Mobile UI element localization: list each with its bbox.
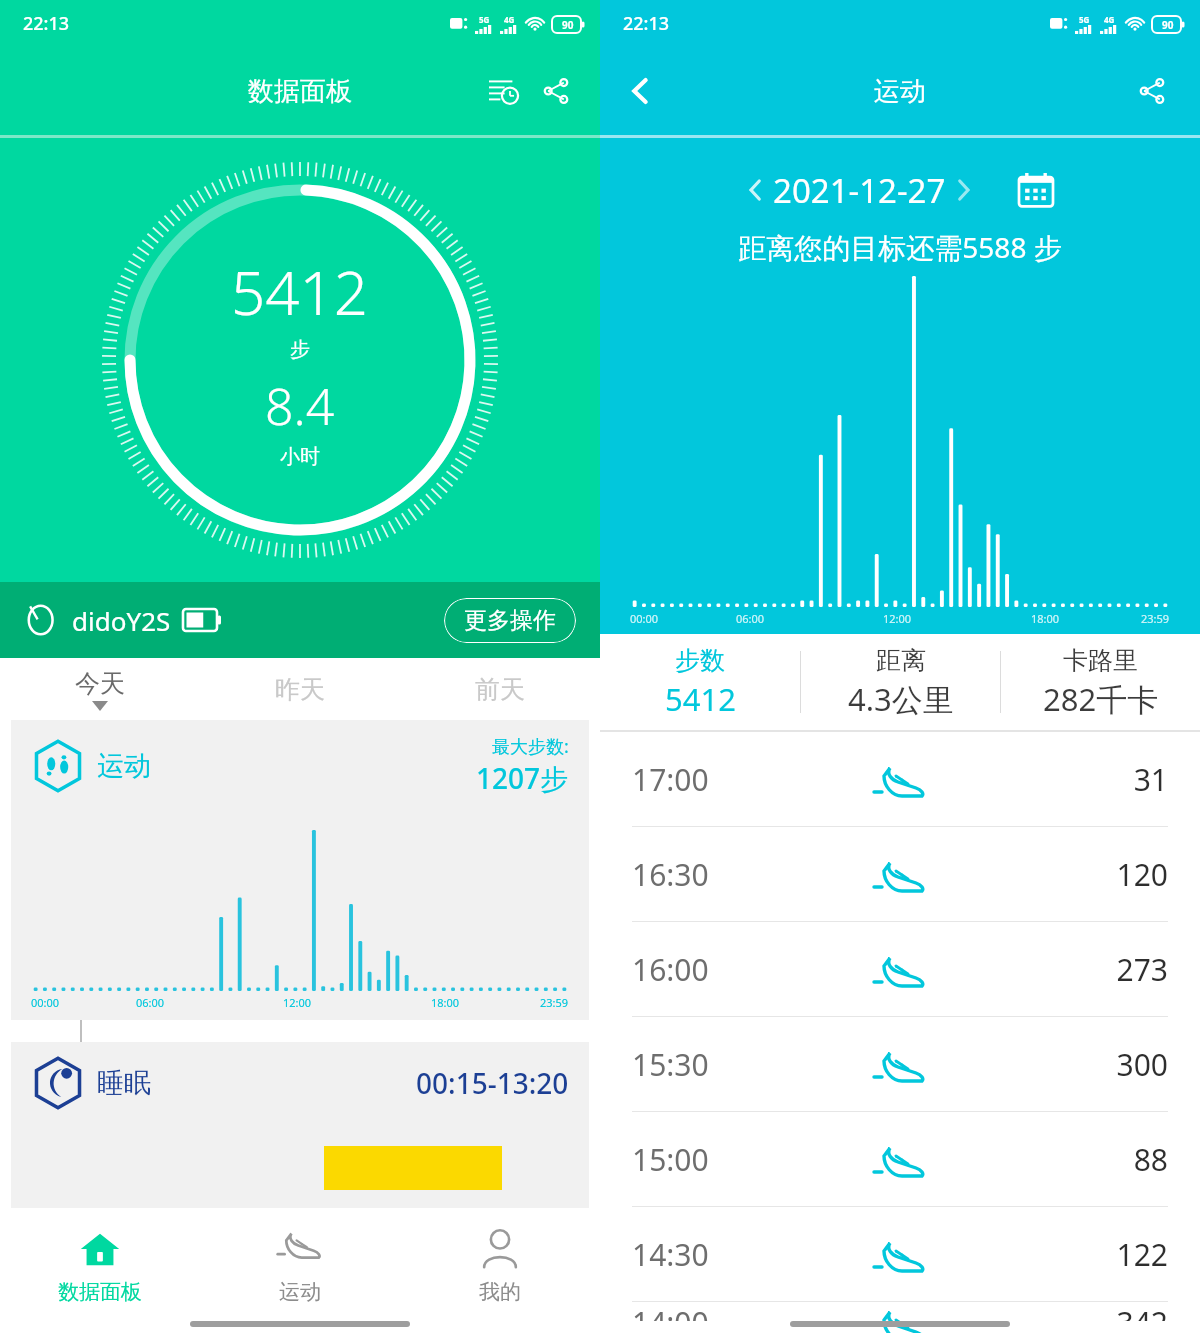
staticText: 最大步数:: [492, 734, 569, 759]
staticText: 8.4: [265, 372, 335, 440]
staticText: 06:00: [136, 995, 165, 1010]
staticText: 数据面板: [58, 1279, 142, 1305]
button[interactable]: 2021-12-27: [600, 164, 1200, 216]
staticText: 120: [989, 854, 1168, 895]
staticText: 更多操作: [464, 606, 556, 635]
button[interactable]: 今天: [0, 658, 200, 720]
button[interactable]: 运动: [11, 720, 589, 1020]
staticText: 342: [989, 1302, 1168, 1321]
staticText: 122: [989, 1234, 1168, 1275]
button[interactable]: Calendar: [1010, 164, 1062, 216]
button[interactable]: 14:30: [600, 1207, 1200, 1301]
staticText: didoY2S: [72, 603, 171, 638]
button[interactable]: didoY2S: [0, 582, 600, 658]
button[interactable]: 睡眠: [11, 1042, 589, 1208]
staticText: 282千卡: [1043, 678, 1159, 720]
button[interactable]: 昨天: [200, 658, 400, 720]
staticText: 90: [1162, 18, 1174, 32]
button[interactable]: Share: [1128, 67, 1176, 115]
staticText: 卡路里: [1063, 645, 1138, 676]
staticText: 23:59: [540, 995, 569, 1010]
staticText: 距离: [876, 645, 926, 676]
staticText: 睡眠: [97, 1066, 151, 1100]
staticText: 5G: [479, 14, 490, 25]
button[interactable]: 16:00: [600, 922, 1200, 1016]
staticText: 12:00: [283, 995, 312, 1010]
staticText: 昨天: [275, 674, 325, 705]
staticText: 5G: [1079, 14, 1090, 25]
staticText: 运动: [279, 1279, 321, 1305]
staticText: 4.3公里: [848, 678, 954, 720]
staticText: 步: [290, 337, 310, 362]
staticText: 18:00: [1031, 611, 1060, 626]
button[interactable]: 前天: [400, 658, 600, 720]
button[interactable]: 更多操作: [444, 598, 576, 643]
staticText: 小时: [280, 444, 320, 469]
staticText: 数据面板: [248, 75, 352, 108]
button[interactable]: 16:30: [600, 827, 1200, 921]
staticText: 我的: [479, 1279, 521, 1305]
staticText: 14:00: [632, 1302, 810, 1321]
staticText: 22:13: [623, 11, 670, 36]
button[interactable]: Share: [532, 67, 580, 115]
staticText: 31: [989, 759, 1168, 800]
staticText: 90: [562, 18, 574, 32]
button[interactable]: 14:00: [600, 1302, 1200, 1321]
staticText: 运动: [874, 75, 926, 108]
button[interactable]: 运动: [200, 1208, 400, 1321]
button[interactable]: 17:00: [600, 732, 1200, 826]
button[interactable]: History: [480, 67, 528, 115]
staticText: 4G: [504, 14, 515, 25]
button[interactable]: 15:30: [600, 1017, 1200, 1111]
staticText: 14:30: [632, 1234, 810, 1275]
staticText: 5412: [231, 251, 369, 333]
staticText: 273: [989, 949, 1168, 990]
staticText: 00:15-13:20: [416, 1064, 569, 1102]
button[interactable]: 步数: [600, 634, 800, 730]
staticText: 16:30: [632, 854, 810, 895]
staticText: 运动: [97, 749, 151, 783]
staticText: 5412: [665, 678, 736, 720]
staticText: 16:00: [632, 949, 810, 990]
staticText: 12:00: [883, 611, 912, 626]
staticText: 前天: [475, 674, 525, 705]
staticText: 2021-12-27: [773, 168, 946, 213]
button[interactable]: Back: [614, 64, 668, 118]
staticText: 00:00: [31, 995, 60, 1010]
staticText: 22:13: [23, 11, 70, 36]
staticText: 00:00: [630, 611, 659, 626]
staticText: 18:00: [431, 995, 460, 1010]
staticText: 15:30: [632, 1044, 810, 1085]
staticText: 1207步: [476, 759, 569, 797]
button[interactable]: 卡路里: [1001, 634, 1200, 730]
staticText: 15:00: [632, 1139, 810, 1180]
staticText: 23:59: [1141, 611, 1170, 626]
button[interactable]: 15:00: [600, 1112, 1200, 1206]
staticText: 300: [989, 1044, 1168, 1085]
button[interactable]: 距离: [801, 634, 1000, 730]
staticText: 88: [989, 1139, 1168, 1180]
staticText: 17:00: [632, 759, 810, 800]
button[interactable]: 我的: [400, 1208, 600, 1321]
button[interactable]: 数据面板: [0, 1208, 200, 1321]
staticText: 06:00: [736, 611, 765, 626]
staticText: 距离您的目标还需5588 步: [600, 228, 1200, 266]
staticText: 步数: [675, 645, 725, 676]
staticText: 今天: [75, 668, 125, 699]
staticText: 4G: [1104, 14, 1115, 25]
